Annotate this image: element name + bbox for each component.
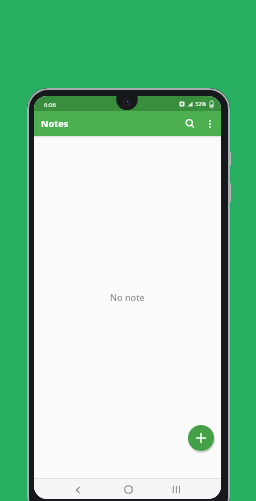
button[interactable] [116,480,140,499]
button[interactable] [188,425,214,451]
button[interactable] [67,480,89,499]
staticText: 32% [195,100,207,108]
button[interactable] [165,480,187,499]
staticText: No note [110,291,145,304]
button[interactable] [201,115,219,133]
staticText: Notes [41,117,69,130]
button[interactable] [179,113,201,135]
staticText: 6:06 [44,101,56,109]
